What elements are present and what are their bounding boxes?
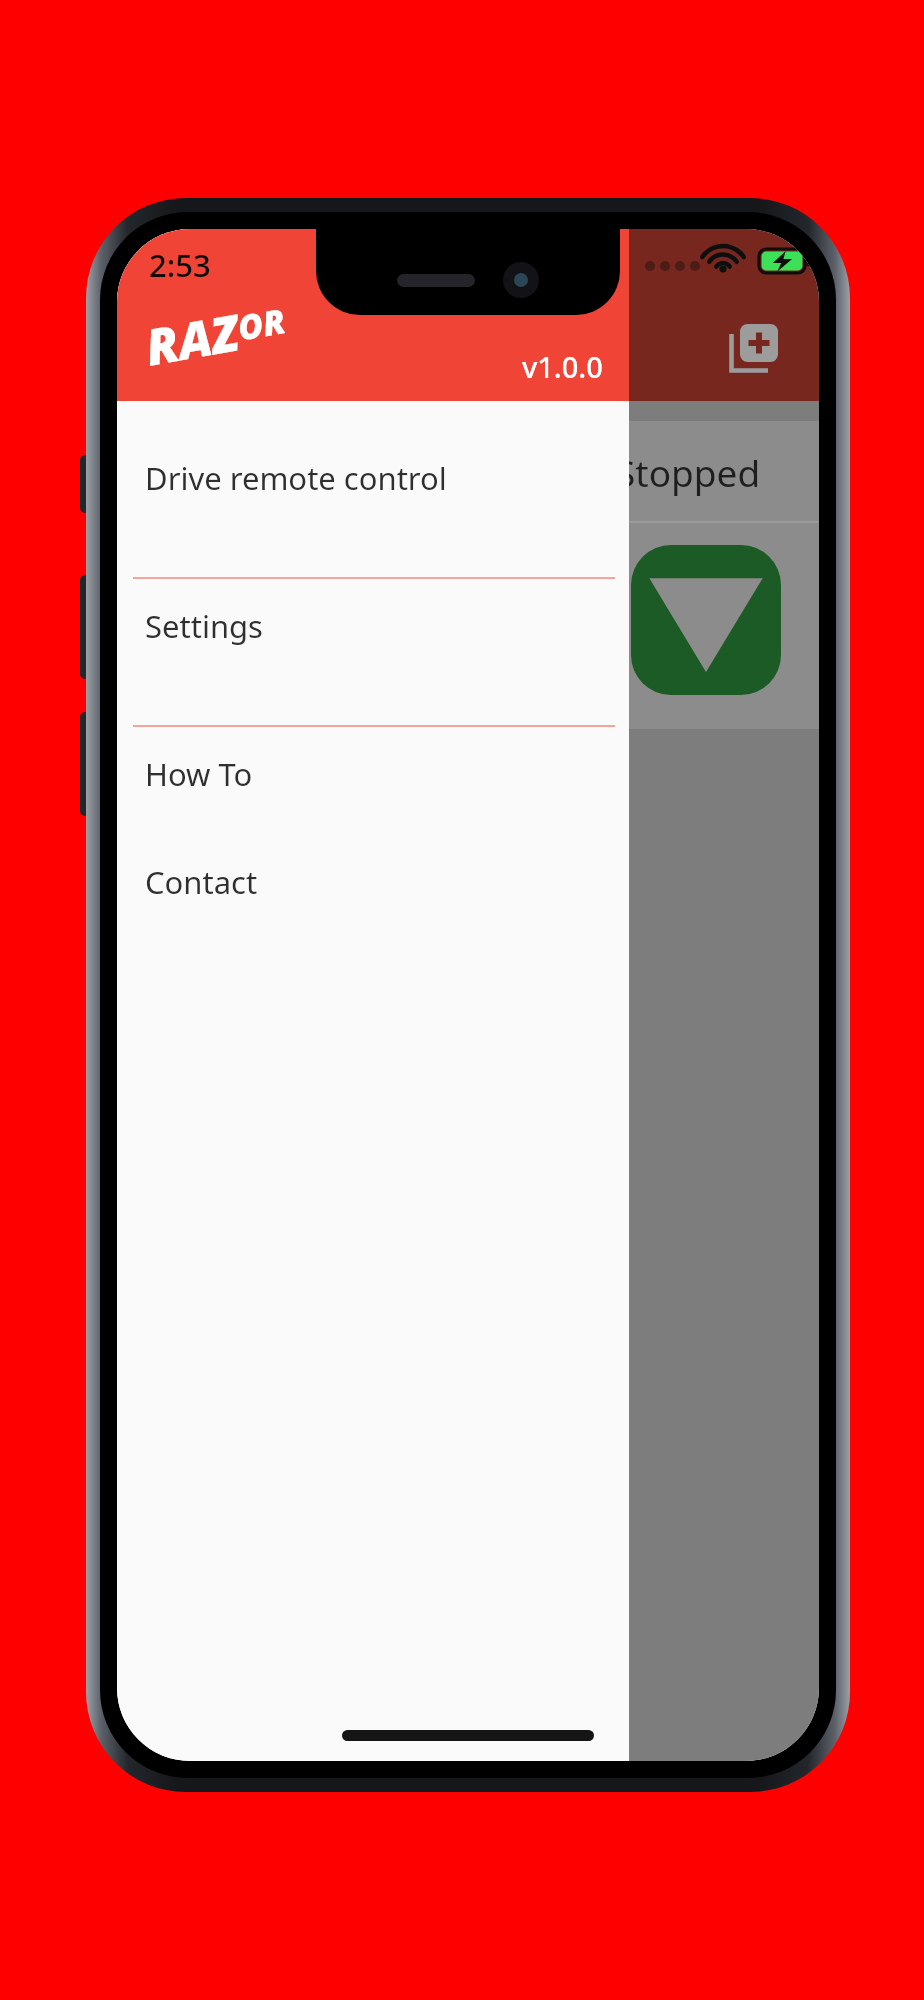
button[interactable]: Settings <box>117 579 629 727</box>
button[interactable]: Drive remote control <box>117 431 629 579</box>
button[interactable]: Contact <box>117 835 629 943</box>
staticText: How To <box>145 753 253 795</box>
button[interactable]: Drive down <box>631 545 781 695</box>
button[interactable]: How To <box>117 727 629 835</box>
staticText: Contact <box>145 861 258 903</box>
staticText: Drive remote control <box>145 457 447 499</box>
staticText: Settings <box>145 605 263 647</box>
staticText: v1.0.0 <box>522 347 603 386</box>
button[interactable]: Add <box>719 313 789 383</box>
staticText: RAZ <box>140 297 244 381</box>
staticText: Stopped <box>615 447 761 497</box>
staticText: 2:53 <box>149 244 211 286</box>
staticText: OR <box>234 297 289 351</box>
